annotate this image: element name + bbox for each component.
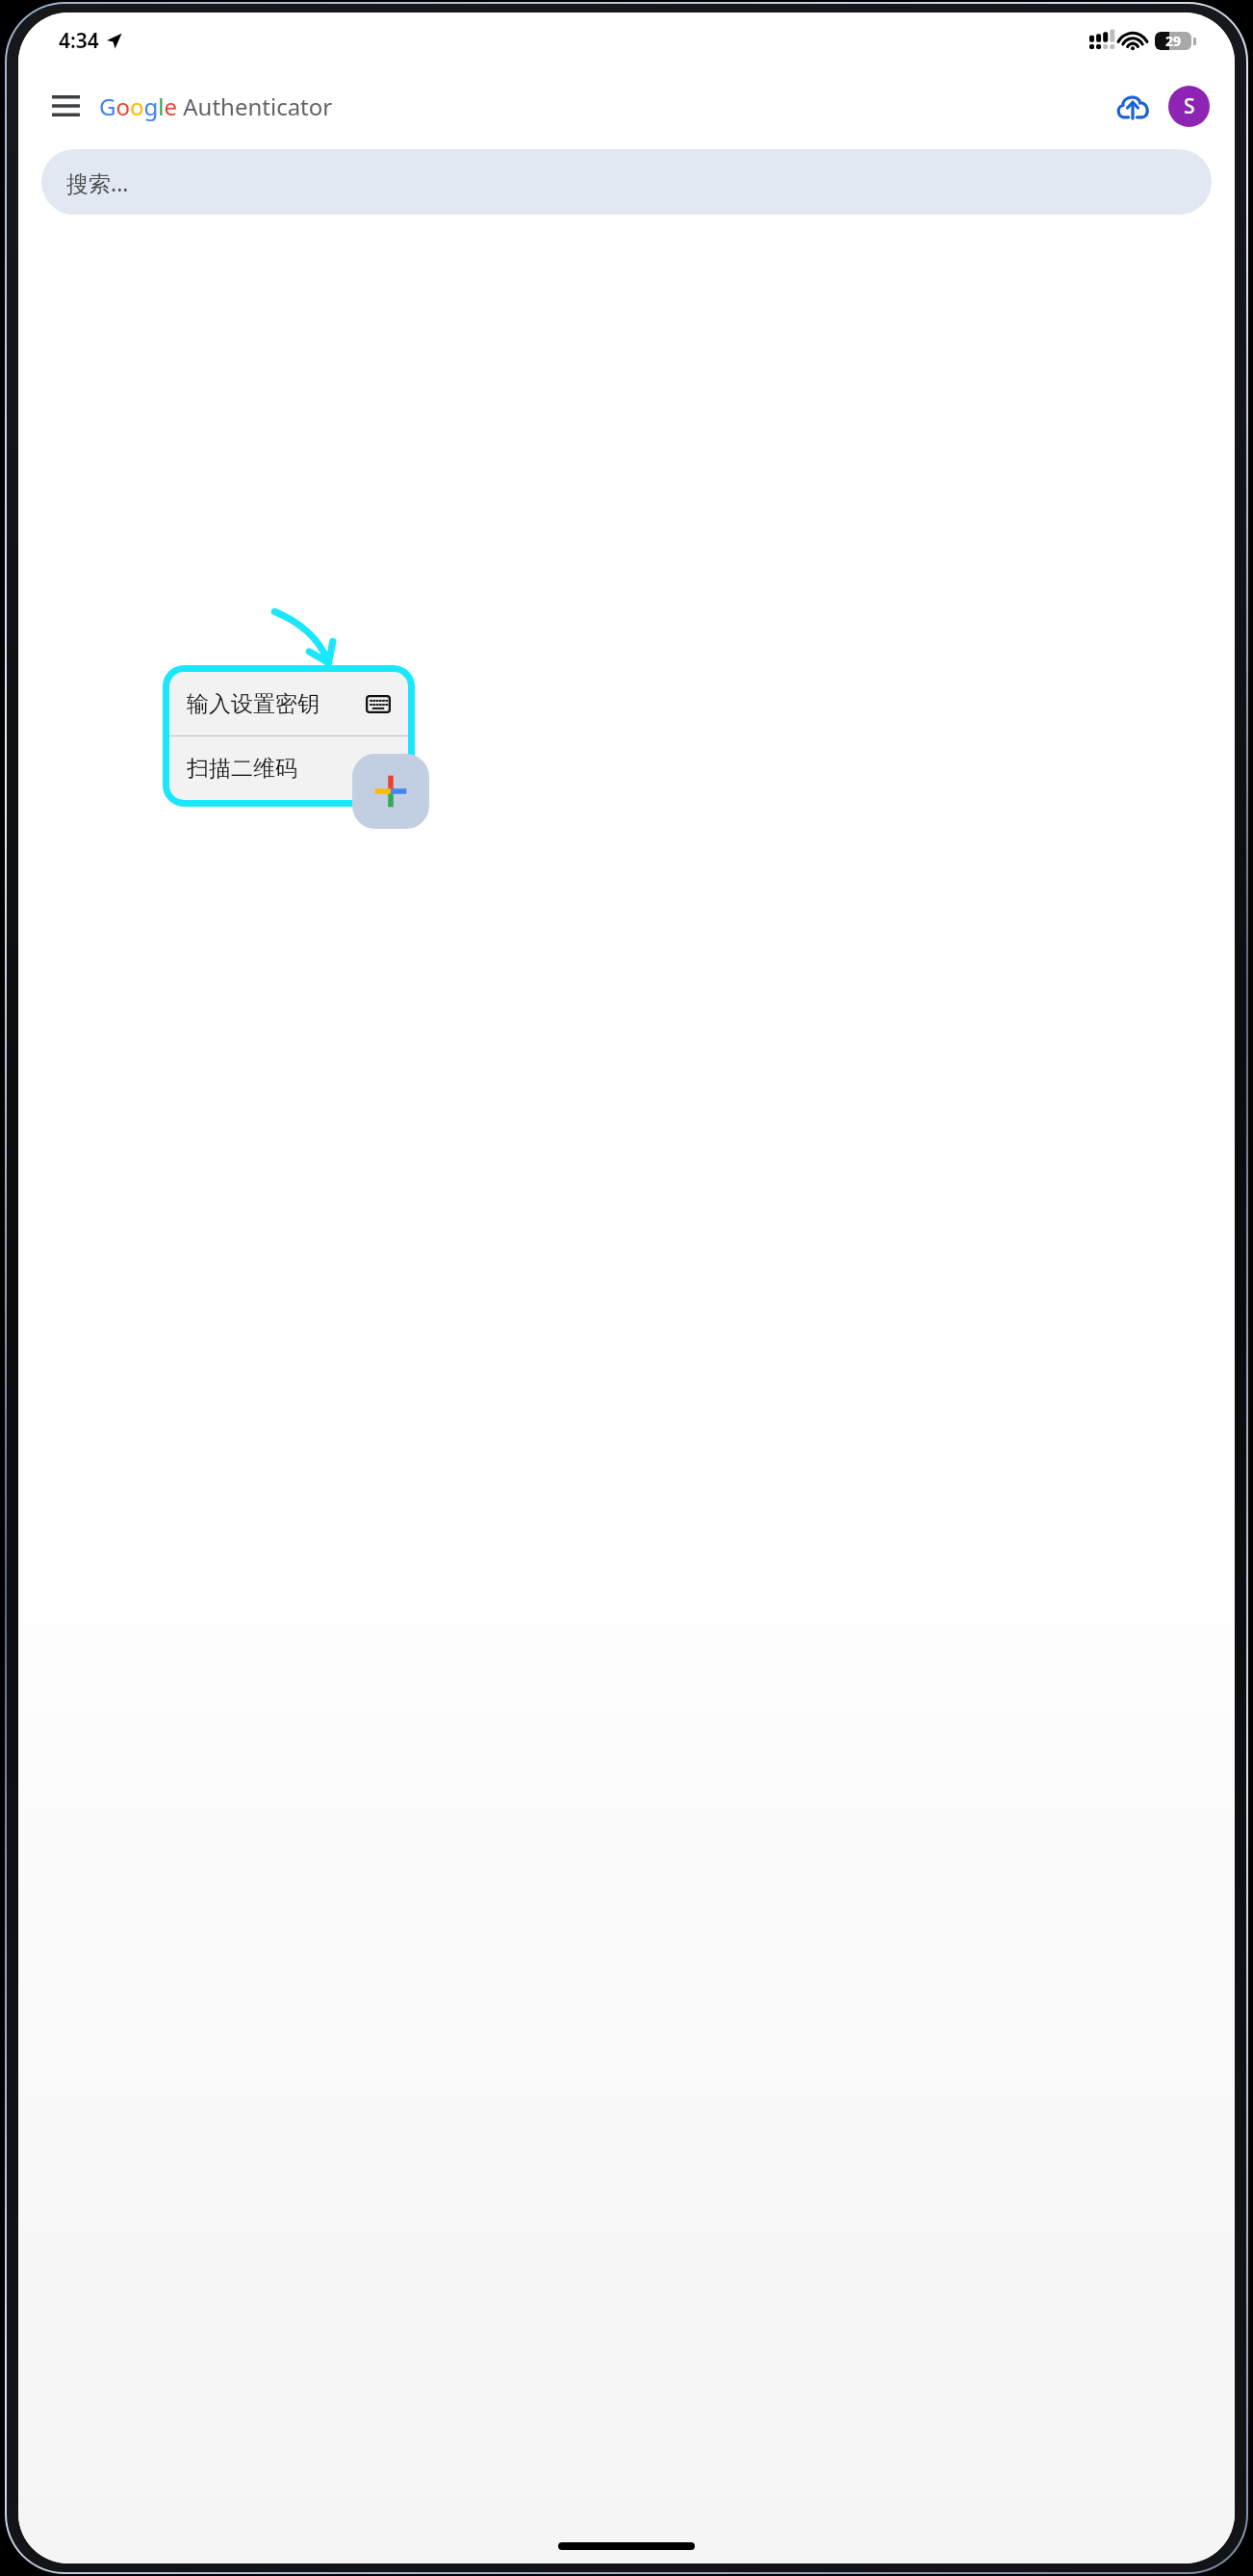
staticText: Google Authenticator [99, 90, 333, 122]
staticText: 29 [1165, 32, 1182, 50]
staticText: 4:34 [59, 27, 99, 55]
staticText: S [1184, 92, 1195, 120]
button[interactable]: 输入设置密钥 [169, 672, 408, 735]
button[interactable]: Account [1168, 86, 1210, 127]
button[interactable]: 扫描二维码 [169, 736, 408, 800]
button[interactable]: Add account [352, 754, 429, 829]
staticText: 扫描二维码 [187, 755, 297, 783]
staticText: 搜索... [66, 167, 129, 197]
staticText: 输入设置密钥 [187, 690, 320, 718]
button[interactable]: Open navigation menu [43, 84, 88, 128]
button[interactable]: Back up accounts [1111, 84, 1155, 128]
button[interactable]: 搜索... [41, 149, 1212, 215]
